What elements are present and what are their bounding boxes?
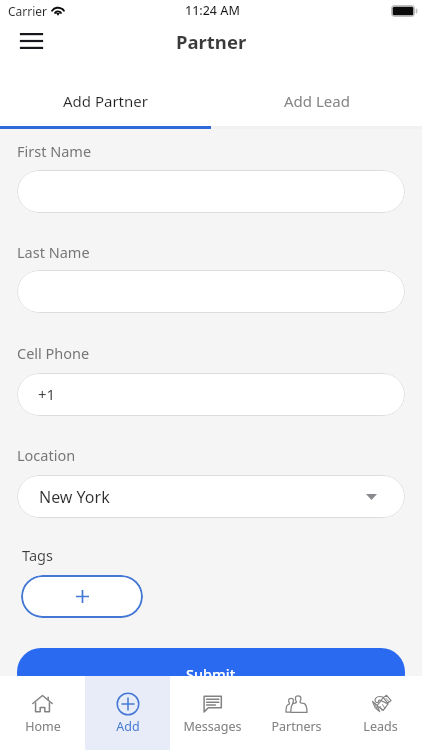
staticText: Tags bbox=[22, 545, 53, 565]
staticText: Leads bbox=[363, 718, 398, 735]
staticText: Messages bbox=[183, 718, 242, 735]
button[interactable] bbox=[17, 270, 405, 313]
staticText: Home bbox=[25, 718, 61, 735]
button[interactable]: Partners bbox=[254, 676, 338, 750]
button[interactable]: Add tag bbox=[21, 575, 143, 618]
button[interactable]: Add Lead bbox=[211, 75, 422, 126]
button[interactable]: Open navigation menu bbox=[10, 20, 52, 62]
staticText: +1 bbox=[38, 384, 56, 404]
button[interactable]: +1 bbox=[17, 373, 405, 416]
staticText: Cell Phone bbox=[17, 343, 90, 363]
button[interactable]: Submit bbox=[17, 648, 405, 698]
staticText: 11:24 AM bbox=[185, 2, 240, 19]
button[interactable]: Messages bbox=[170, 676, 254, 750]
staticText: Last Name bbox=[17, 242, 90, 262]
staticText: Location bbox=[17, 445, 76, 465]
button[interactable]: Home bbox=[0, 676, 85, 750]
staticText: First Name bbox=[17, 141, 92, 161]
staticText: Carrier bbox=[8, 3, 48, 19]
button[interactable]: New York bbox=[17, 475, 405, 518]
button[interactable]: Add bbox=[85, 676, 170, 750]
staticText: Partner bbox=[176, 29, 247, 54]
staticText: Add bbox=[116, 718, 140, 735]
button[interactable]: Leads bbox=[338, 676, 422, 750]
staticText: Partners bbox=[271, 718, 322, 735]
button[interactable]: Add Partner bbox=[0, 75, 211, 126]
staticText: Submit bbox=[186, 664, 236, 684]
button[interactable] bbox=[17, 170, 405, 213]
staticText: Add Partner bbox=[63, 91, 148, 111]
staticText: Add Lead bbox=[284, 91, 350, 111]
staticText: New York bbox=[39, 486, 110, 508]
